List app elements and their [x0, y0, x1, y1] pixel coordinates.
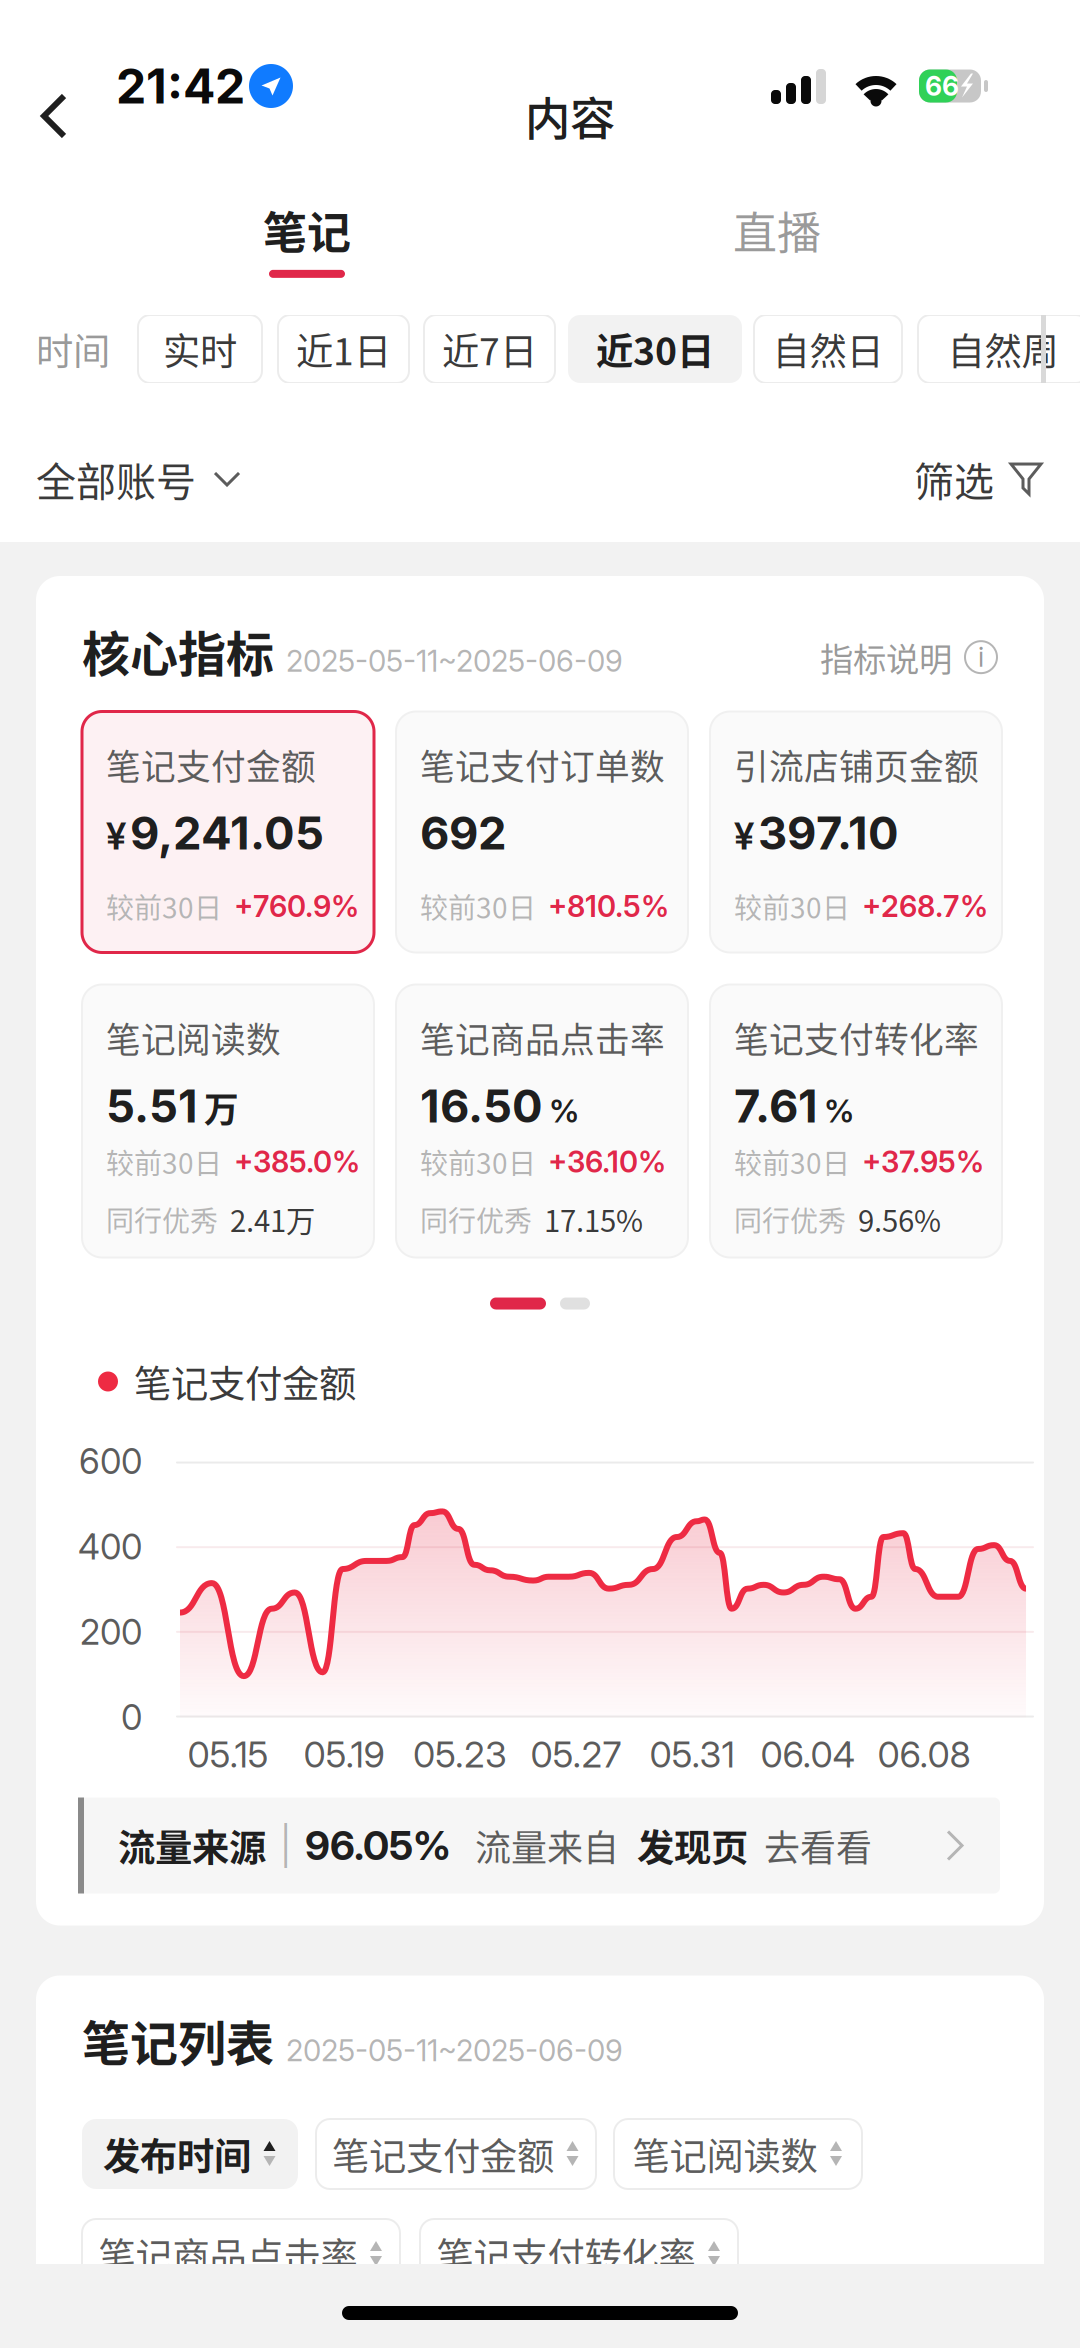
staticText: 同行优秀	[420, 1199, 532, 1240]
button[interactable]: 引流店铺页金额	[710, 711, 1002, 952]
staticText: 9.56%	[858, 1198, 941, 1241]
button[interactable]: 笔记支付转化率	[710, 984, 1002, 1257]
staticText: 笔记支付订单数	[420, 739, 665, 790]
staticText: 05.23	[413, 1733, 507, 1776]
staticText: 9,241.05	[130, 806, 324, 861]
button[interactable]: 近1日	[278, 315, 409, 383]
staticText: 自然日	[772, 322, 883, 376]
staticText: i	[978, 641, 984, 673]
staticText: 筛选	[914, 450, 994, 508]
staticText: 400	[78, 1526, 142, 1568]
button[interactable]: 筛选	[914, 440, 1044, 518]
staticText: 实时	[163, 322, 237, 376]
staticText: 16.50	[420, 1079, 543, 1134]
button[interactable]: 实时	[138, 315, 262, 383]
button[interactable]: Back	[30, 84, 112, 148]
button[interactable]: 笔记支付金额	[316, 2119, 596, 2189]
staticText: 2025-05-11~2025-06-09	[286, 2033, 623, 2068]
staticText: 全部账号	[36, 450, 196, 508]
staticText: 笔记商品点击率	[420, 1012, 665, 1063]
staticText: 笔记支付金额	[134, 1354, 356, 1409]
button[interactable]: 笔记商品点击率	[82, 2219, 400, 2289]
staticText: %	[824, 1092, 854, 1130]
staticText: 笔记支付金额	[106, 739, 316, 790]
button[interactable]: 自然日	[754, 315, 902, 383]
staticText: 较前30日	[106, 886, 222, 926]
staticText: 05.31	[649, 1733, 734, 1776]
staticText: 较前30日	[734, 1142, 850, 1182]
staticText: 同行优秀	[734, 1199, 846, 1240]
staticText: 直播	[733, 198, 821, 262]
staticText: 笔记商品点击率	[98, 2227, 357, 2281]
staticText: 200	[80, 1611, 142, 1653]
staticText: 指标说明	[820, 633, 952, 681]
button[interactable]: 全部账号	[36, 440, 242, 518]
button[interactable]: 近30日	[568, 315, 742, 383]
staticText: 笔记列表	[82, 2005, 274, 2075]
staticText: 05.15	[187, 1733, 268, 1776]
staticText: 万	[204, 1082, 239, 1133]
staticText: 笔记	[263, 198, 351, 262]
staticText: 2025-05-11~2025-06-09	[286, 643, 623, 679]
staticText: +36.10%	[548, 1144, 666, 1180]
staticText: 同行优秀	[106, 1199, 218, 1240]
staticText: 600	[79, 1440, 142, 1482]
button[interactable]: 指标说明	[820, 633, 998, 681]
staticText: 笔记支付转化率	[436, 2227, 695, 2281]
staticText: 较前30日	[420, 886, 536, 926]
button[interactable]: 自然周	[918, 315, 1080, 383]
button[interactable]: 笔记支付转化率	[420, 2219, 738, 2289]
staticText: ¥	[734, 813, 754, 859]
staticText: 05.27	[530, 1733, 621, 1776]
staticText: 2.41万	[230, 1198, 315, 1241]
staticText: 发布时间	[103, 2127, 251, 2181]
staticText: 近30日	[596, 322, 714, 376]
staticText: 0	[121, 1696, 142, 1738]
staticText: 66	[925, 70, 959, 102]
staticText: 自然周	[947, 322, 1058, 376]
staticText: 笔记支付转化率	[734, 1012, 979, 1063]
button[interactable]: 笔记支付订单数	[396, 711, 688, 952]
button[interactable]: 笔记支付金额	[82, 711, 374, 952]
button[interactable]: 笔记阅读数	[82, 984, 374, 1257]
staticText: 引流店铺页金额	[734, 739, 979, 790]
staticText: +268.7%	[862, 888, 988, 924]
button[interactable]: 笔记商品点击率	[396, 984, 688, 1257]
staticText: 17.15%	[544, 1198, 643, 1241]
staticText: 核心指标	[82, 616, 274, 685]
staticText: 去看看	[764, 1819, 872, 1871]
staticText: 近1日	[296, 322, 391, 376]
staticText: 内容	[525, 83, 615, 149]
staticText: 发现页	[637, 1818, 748, 1873]
staticText: +810.5%	[548, 888, 669, 924]
staticText: 692	[420, 806, 507, 861]
button[interactable]: 流量来源	[78, 1797, 1000, 1893]
staticText: 06.04	[760, 1733, 855, 1776]
staticText: 较前30日	[734, 886, 850, 926]
staticText: +385.0%	[234, 1144, 360, 1180]
staticText: +37.95%	[862, 1144, 984, 1180]
staticText: 7.61	[734, 1079, 818, 1134]
button[interactable]: 近7日	[424, 315, 555, 383]
staticText: 流量来自	[475, 1819, 619, 1871]
staticText: 05.19	[303, 1733, 384, 1776]
staticText: 96.05%	[305, 1821, 451, 1870]
staticText: 5.51	[106, 1079, 198, 1134]
staticText: +760.9%	[234, 888, 359, 924]
staticText: 较前30日	[106, 1142, 222, 1182]
button[interactable]: 发布时间	[82, 2119, 298, 2189]
staticText: ¥	[106, 813, 126, 859]
staticText: 06.08	[877, 1733, 970, 1776]
staticText: 笔记阅读数	[632, 2127, 817, 2181]
button[interactable]: 笔记	[157, 183, 457, 283]
button[interactable]: 直播	[627, 183, 927, 283]
staticText: 时间	[36, 322, 110, 376]
staticText: 397.10	[758, 806, 899, 861]
staticText: |	[280, 1823, 291, 1868]
staticText: 笔记支付金额	[332, 2127, 554, 2181]
staticText: 近7日	[442, 322, 537, 376]
button[interactable]: 笔记阅读数	[614, 2119, 862, 2189]
staticText: 流量来源	[118, 1818, 266, 1873]
staticText: 笔记阅读数	[106, 1012, 281, 1063]
staticText: %	[549, 1092, 579, 1130]
